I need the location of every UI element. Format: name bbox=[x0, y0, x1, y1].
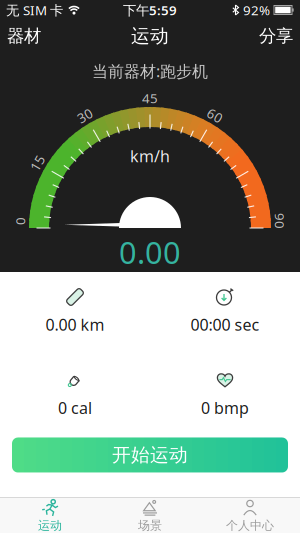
staticText: 45 bbox=[142, 89, 158, 107]
staticText: km/h bbox=[130, 145, 170, 167]
staticText: 场景 bbox=[138, 518, 162, 533]
staticText: 0.00 km bbox=[45, 314, 104, 335]
button[interactable]: 开始运动 bbox=[12, 437, 288, 472]
staticText: 当前器材:跑步机 bbox=[92, 60, 208, 82]
staticText: 92% bbox=[243, 1, 270, 19]
staticText: 个人中心 bbox=[226, 518, 274, 533]
button[interactable]: 分享 bbox=[259, 25, 293, 47]
staticText: 90 bbox=[272, 212, 288, 230]
staticText: 60 bbox=[207, 107, 223, 124]
button[interactable]: 个人中心 bbox=[200, 498, 300, 532]
staticText: 开始运动 bbox=[112, 443, 188, 466]
staticText: 运动 bbox=[131, 24, 169, 47]
staticText: 30 bbox=[77, 107, 93, 124]
staticText: 无 SIM 卡 bbox=[6, 1, 63, 19]
staticText: 0.00 bbox=[119, 232, 181, 272]
staticText: 15 bbox=[29, 154, 45, 172]
button[interactable]: 场景 bbox=[100, 498, 200, 532]
button[interactable]: 器材 bbox=[7, 25, 41, 47]
staticText: 下午5:59 bbox=[123, 1, 177, 19]
staticText: 0 cal bbox=[58, 397, 92, 418]
staticText: 00:00 sec bbox=[190, 314, 259, 335]
button[interactable]: 运动 bbox=[0, 498, 100, 532]
staticText: 0 bmp bbox=[201, 397, 249, 418]
staticText: 运动 bbox=[38, 518, 62, 533]
staticText: 0 bbox=[16, 212, 24, 230]
staticText: 分享 bbox=[259, 25, 293, 47]
staticText: 器材 bbox=[7, 25, 41, 47]
